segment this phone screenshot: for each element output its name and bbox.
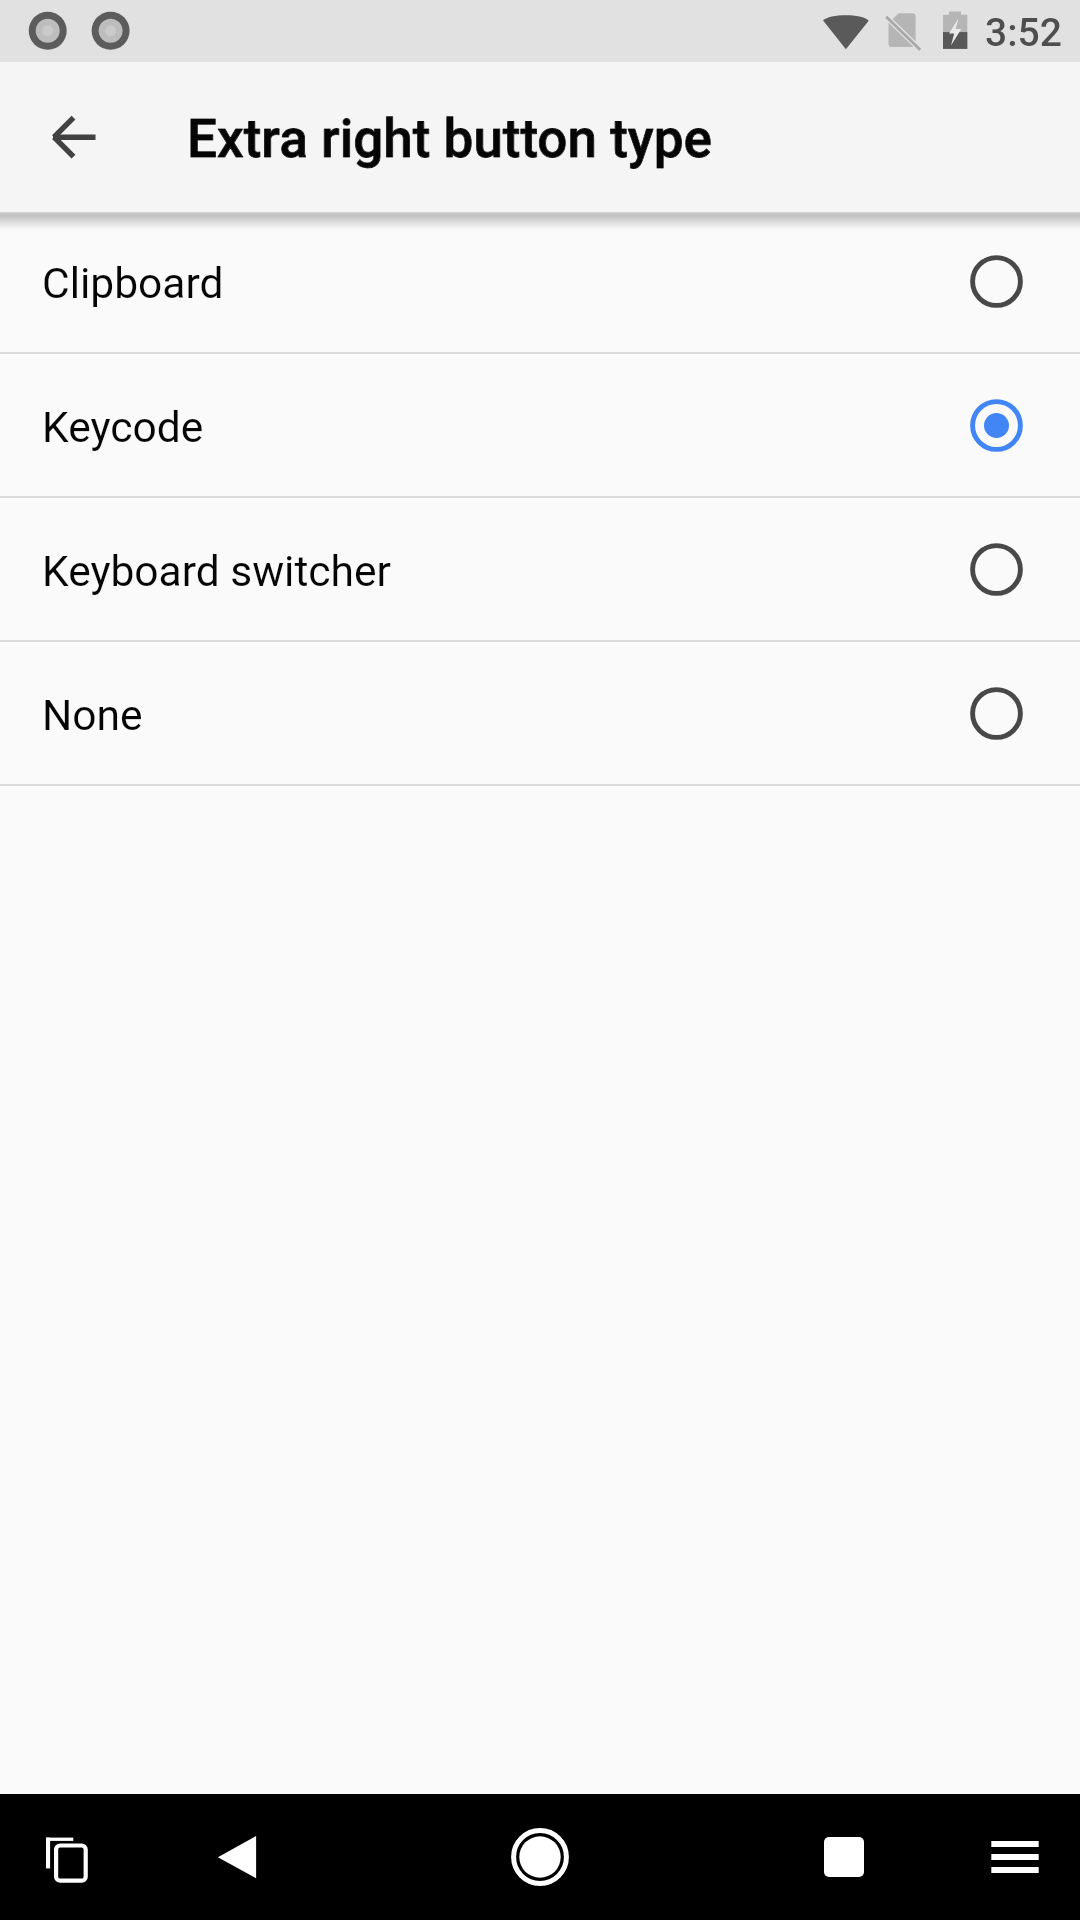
button[interactable]: None <box>0 642 1080 784</box>
staticText: Extra right button type <box>187 108 712 170</box>
button[interactable]: Back <box>183 1794 291 1920</box>
staticText: 3:52 <box>985 10 1062 56</box>
button[interactable]: Clipboard <box>0 210 1080 352</box>
button[interactable]: Menu <box>961 1794 1069 1920</box>
button[interactable]: Home <box>486 1794 594 1920</box>
button[interactable]: Keycode <box>0 354 1080 496</box>
button[interactable]: Keyboard switcher <box>0 498 1080 640</box>
button[interactable]: Clipboard <box>11 1794 119 1920</box>
staticText: Keyboard switcher <box>42 547 391 597</box>
staticText: Keycode <box>42 403 204 453</box>
button[interactable]: Navigate up <box>40 101 110 171</box>
button[interactable]: Recent apps <box>790 1794 898 1920</box>
staticText: None <box>42 691 143 741</box>
staticText: Clipboard <box>42 259 224 309</box>
staticText: Extra right button type <box>187 108 712 170</box>
